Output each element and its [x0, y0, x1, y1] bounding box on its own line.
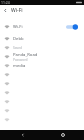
button[interactable]	[0, 106, 84, 115]
button[interactable]: Home	[56, 130, 69, 140]
staticText: 11:24	[1, 0, 10, 5]
button[interactable]: media	[0, 61, 84, 70]
staticText: Debb	[13, 36, 24, 42]
button[interactable]	[0, 97, 84, 106]
button[interactable]: Panda_Road	[0, 52, 84, 61]
button[interactable]: Debb	[0, 34, 84, 43]
staticText: media	[13, 63, 26, 69]
button[interactable]: Wi-Fi	[0, 22, 84, 31]
button[interactable]: Saved	[0, 43, 84, 52]
staticText: Panda_Road	[13, 52, 38, 58]
button[interactable]: Back	[0, 5, 11, 16]
staticText: Wi-Fi	[11, 7, 23, 14]
staticText: Wi-Fi	[13, 24, 23, 30]
button[interactable]	[0, 70, 84, 79]
staticText: Password	[13, 58, 28, 61]
button[interactable]: Back	[16, 130, 29, 140]
button[interactable]	[0, 115, 84, 124]
staticText: Saved	[13, 46, 22, 50]
button[interactable]	[0, 88, 84, 97]
button[interactable]	[0, 79, 84, 88]
